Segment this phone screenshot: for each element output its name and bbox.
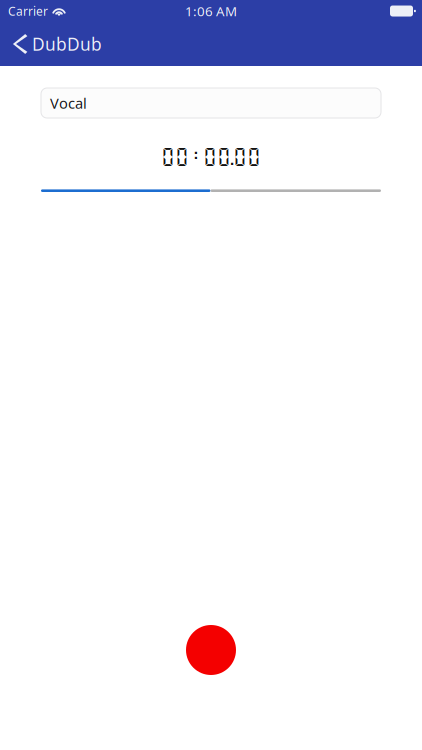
- staticText: DubDub: [32, 32, 102, 55]
- staticText: 00:00.00: [161, 145, 261, 167]
- staticText: 1:06 AM: [185, 2, 237, 20]
- staticText: Carrier: [8, 3, 48, 19]
- button[interactable]: DubDub: [0, 22, 112, 66]
- button[interactable]: Record: [186, 625, 236, 675]
- button[interactable]: Vocal: [41, 88, 381, 118]
- staticText: Vocal: [50, 93, 87, 113]
